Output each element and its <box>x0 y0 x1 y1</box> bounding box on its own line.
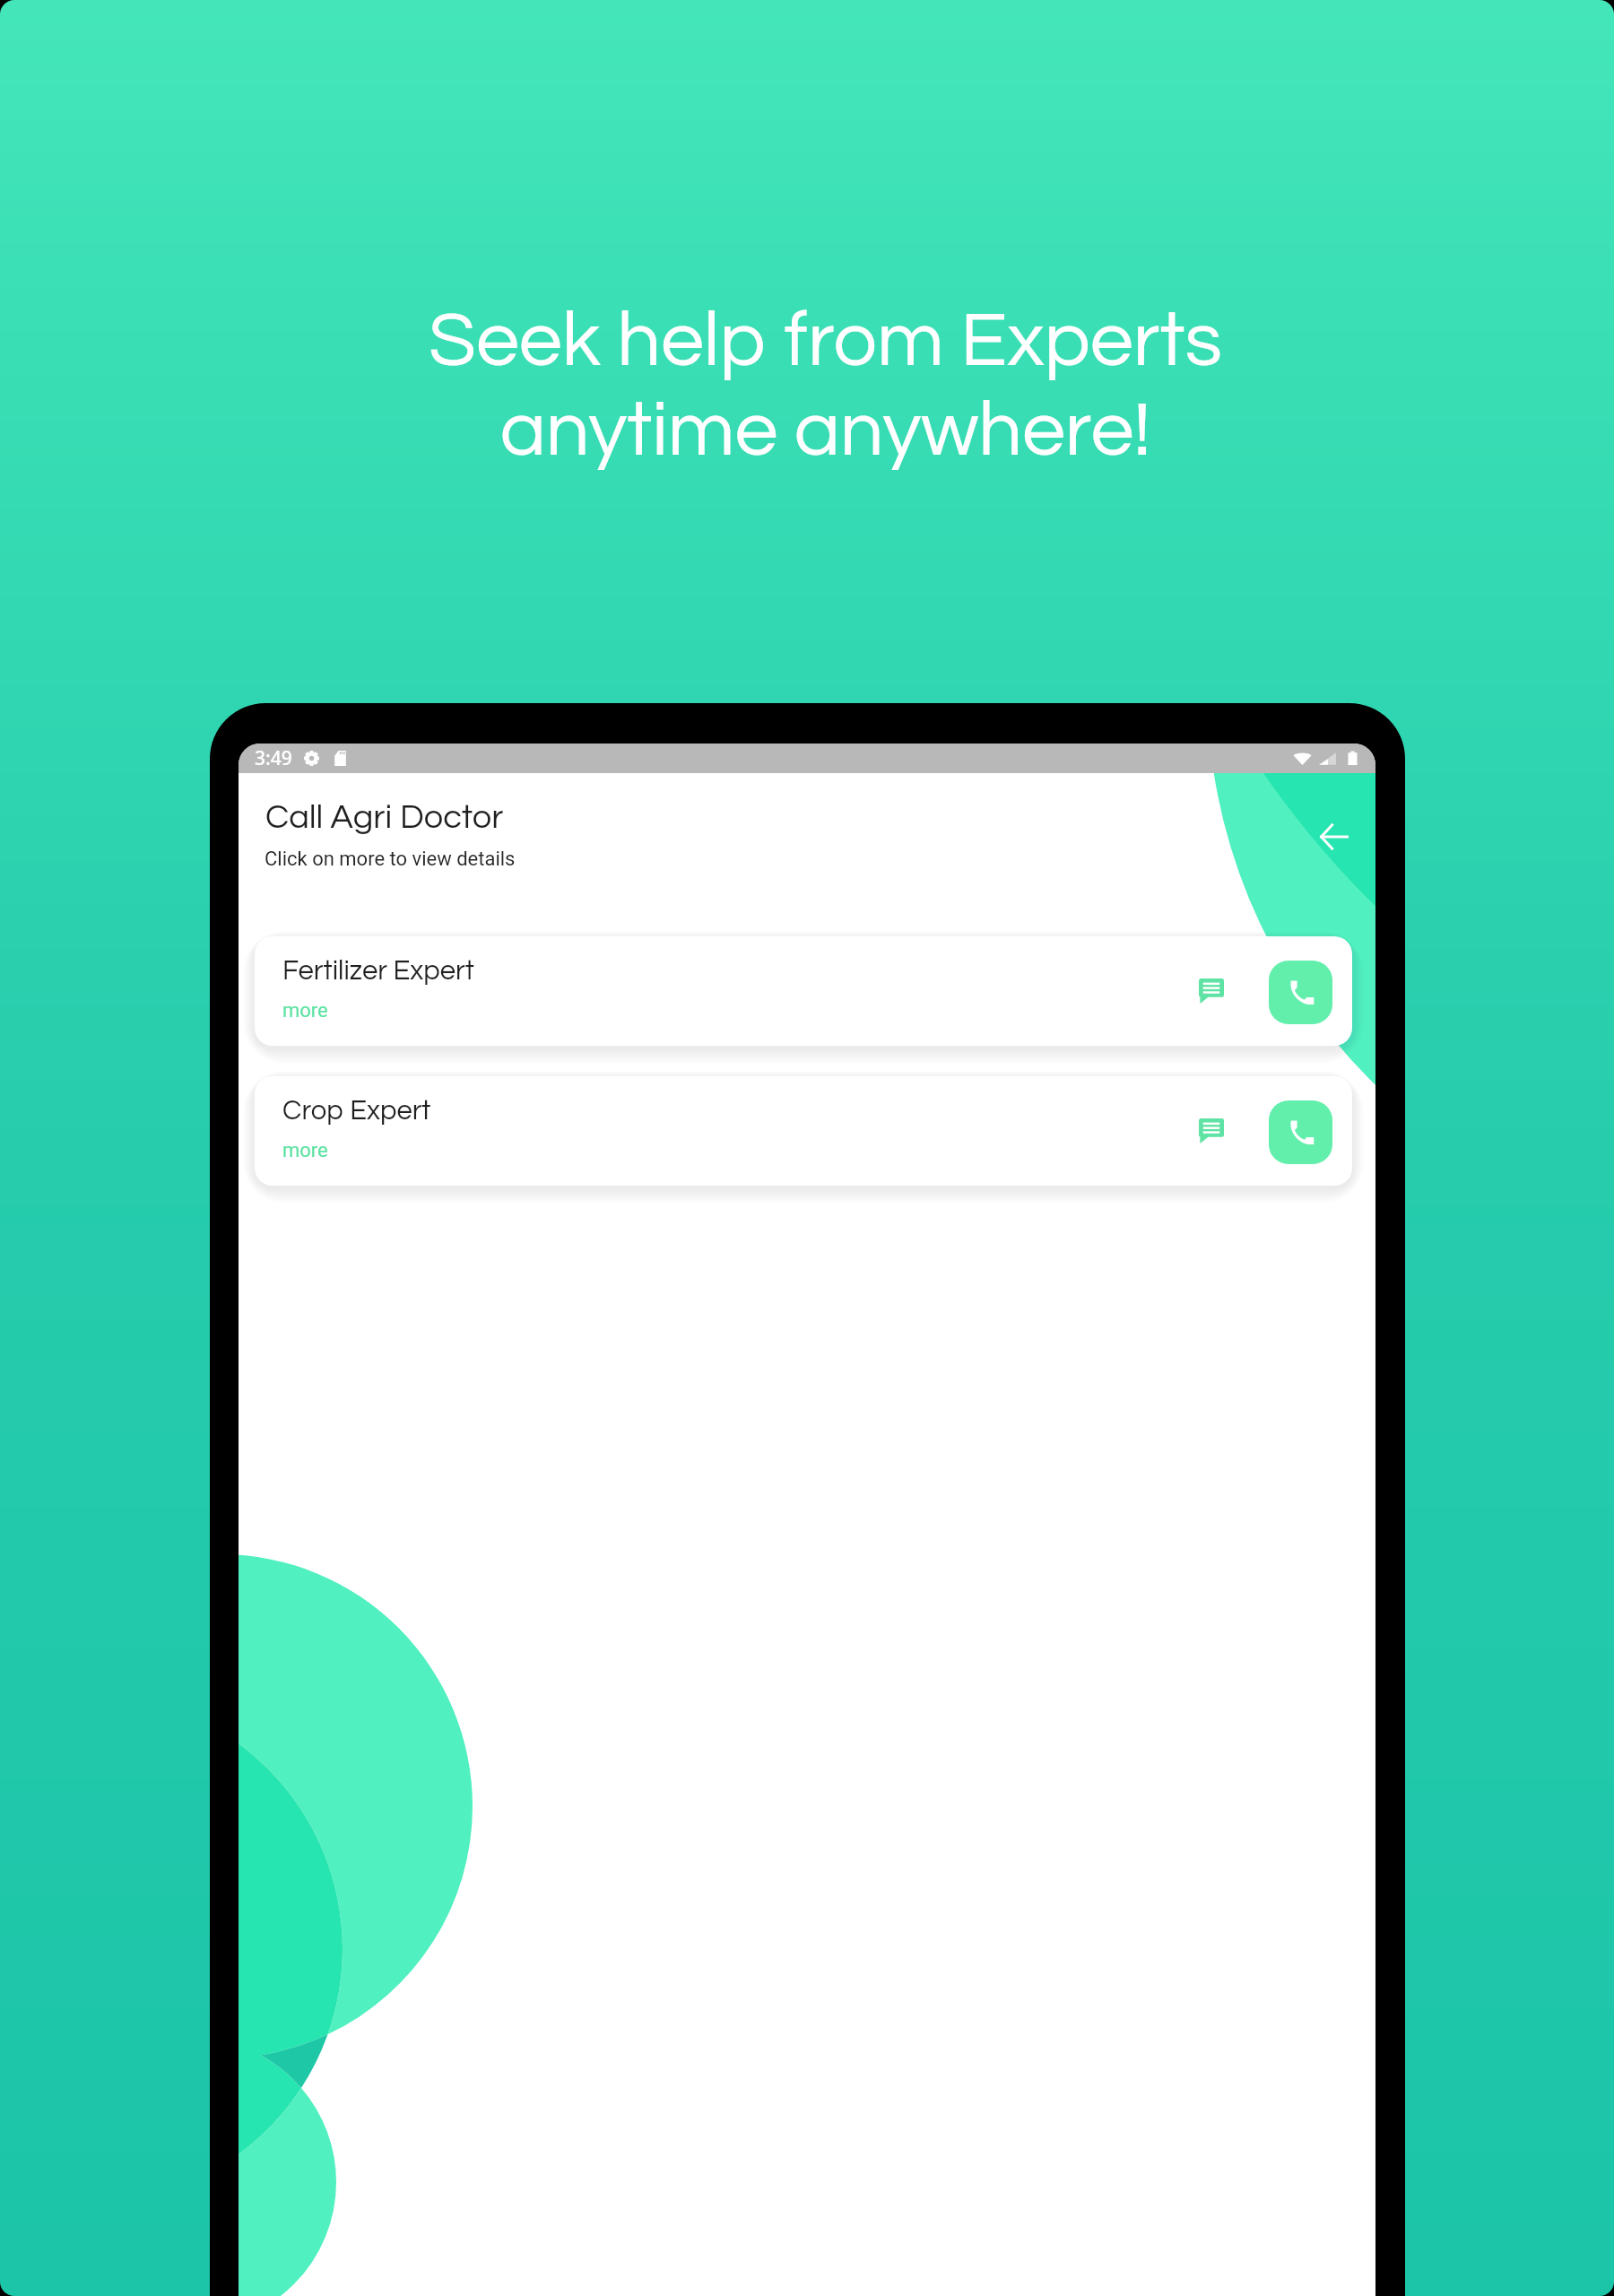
button[interactable]: more <box>282 1139 328 1162</box>
staticText: Seek help from Experts anytime anywhere! <box>429 301 1222 471</box>
button[interactable]: Call expert <box>1269 961 1332 1024</box>
staticText: Click on more to view details <box>265 848 516 871</box>
staticText: Call Agri Doctor <box>265 800 504 835</box>
button[interactable]: more <box>282 999 328 1022</box>
staticText: 3:49 <box>255 745 292 771</box>
button[interactable]: Back <box>1313 815 1356 858</box>
button[interactable]: Fertilizer Expert <box>255 936 1352 1046</box>
button[interactable]: Message expert <box>1192 1111 1231 1151</box>
staticText: Fertilizer Expert <box>282 957 474 986</box>
button[interactable]: Message expert <box>1192 971 1231 1011</box>
button[interactable]: Crop Expert <box>255 1076 1352 1186</box>
staticText: Crop Expert <box>282 1097 431 1126</box>
button[interactable]: Call expert <box>1269 1100 1332 1164</box>
